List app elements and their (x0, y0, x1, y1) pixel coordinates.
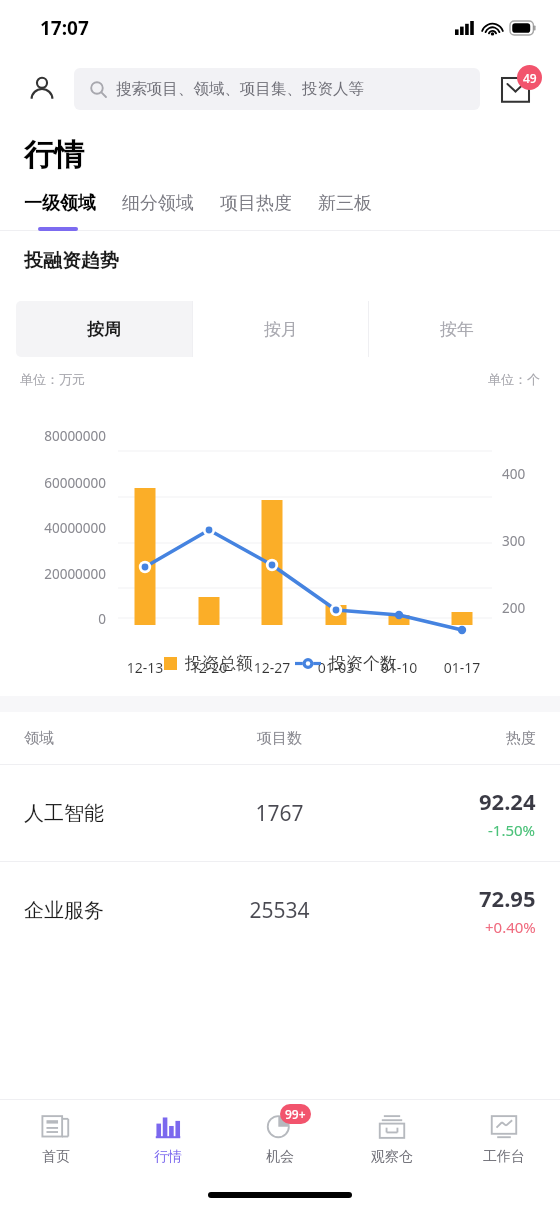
staticText: 企业服务 (24, 898, 194, 923)
button[interactable]: 一级领域 (24, 192, 96, 215)
staticText: 投融资趋势 (24, 249, 119, 273)
staticText: 行情 (24, 136, 84, 174)
staticText: 01-17 (432, 658, 492, 677)
staticText: 领域 (24, 729, 194, 748)
staticText: 单位：万元 (20, 371, 85, 387)
staticText: 60000000 (14, 474, 106, 492)
staticText: 1767 (194, 799, 365, 828)
staticText: 80000000 (14, 427, 106, 445)
staticText: 300 (502, 532, 526, 550)
staticText: -1.50% (488, 820, 536, 840)
staticText: 01-10 (369, 658, 429, 677)
staticText: 新三板 (318, 192, 372, 215)
button[interactable]: 行情 (112, 1100, 224, 1178)
staticText: 99+ (285, 1106, 306, 1122)
staticText: 机会 (266, 1148, 294, 1166)
staticText: 200 (502, 599, 526, 617)
staticText: 按月 (264, 319, 298, 340)
staticText: 项目数 (194, 729, 365, 748)
button[interactable]: 工作台 (448, 1100, 560, 1178)
staticText: 按年 (440, 319, 474, 340)
staticText: 92.24 (479, 786, 536, 816)
staticText: 单位：个 (488, 371, 540, 387)
button[interactable]: 首页 (0, 1100, 112, 1178)
button[interactable]: 按月 (193, 301, 368, 357)
staticText: 投资个数 (329, 653, 397, 674)
staticText: 12-13 (115, 658, 175, 677)
staticText: 行情 (154, 1148, 182, 1166)
button[interactable]: 人工智能 (0, 765, 560, 861)
button[interactable]: 99+ (224, 1100, 336, 1178)
staticText: 17:07 (40, 15, 89, 41)
button[interactable]: Messages, 49 unread (494, 66, 540, 112)
button[interactable]: 按年 (369, 301, 544, 357)
button[interactable]: 搜索项目、领域、项目集、投资人等 (74, 68, 480, 110)
staticText: 工作台 (483, 1148, 525, 1166)
staticText: 热度 (365, 729, 536, 748)
button[interactable]: 观察仓 (336, 1100, 448, 1178)
staticText: 01-03 (306, 658, 366, 677)
staticText: 细分领域 (122, 192, 194, 215)
staticText: 72.95 (479, 883, 536, 913)
button[interactable]: 项目热度 (220, 192, 292, 215)
staticText: 400 (502, 465, 526, 483)
staticText: 投资总额 (185, 653, 253, 674)
button[interactable]: 企业服务 (0, 862, 560, 958)
staticText: 12-27 (242, 658, 302, 677)
staticText: 12-20 (179, 658, 239, 677)
staticText: 人工智能 (24, 801, 194, 826)
button[interactable]: 细分领域 (122, 192, 194, 215)
staticText: 49 (523, 70, 537, 86)
staticText: 按周 (87, 319, 121, 340)
button[interactable]: 按周 (16, 301, 192, 357)
staticText: 25534 (194, 896, 365, 925)
staticText: 搜索项目、领域、项目集、投资人等 (116, 79, 364, 99)
staticText: +0.40% (485, 917, 536, 937)
button[interactable]: 新三板 (318, 192, 372, 215)
staticText: 项目热度 (220, 192, 292, 215)
staticText: 40000000 (14, 519, 106, 537)
button[interactable]: Profile (20, 67, 64, 111)
staticText: 一级领域 (24, 192, 96, 215)
staticText: 观察仓 (371, 1148, 413, 1166)
staticText: 20000000 (14, 565, 106, 583)
staticText: 首页 (42, 1148, 70, 1166)
staticText: 0 (14, 610, 106, 628)
